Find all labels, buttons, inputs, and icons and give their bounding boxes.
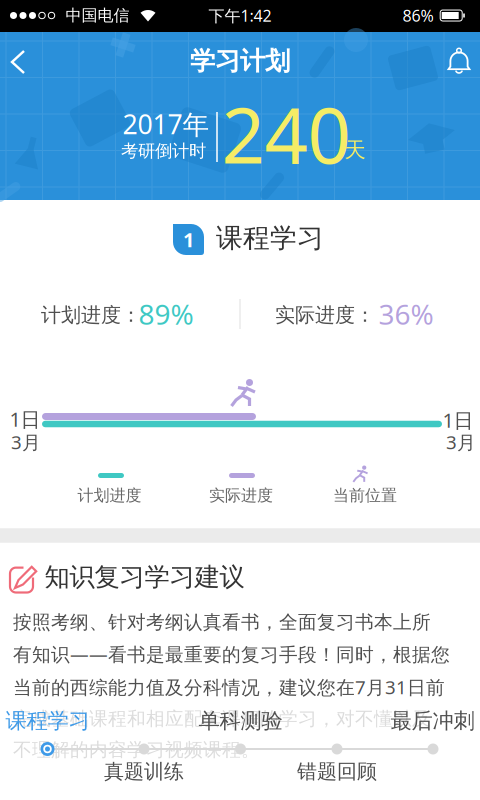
staticText: 1日 <box>442 407 473 433</box>
button[interactable]: 错题回顾 <box>297 759 377 784</box>
staticText: 计划进度： <box>41 303 141 327</box>
button[interactable]: 单科测验 <box>198 708 282 734</box>
button[interactable]: 真题训练 <box>104 759 184 784</box>
staticText: 240 <box>221 83 350 184</box>
staticText: 课程学习 <box>5 708 89 734</box>
staticText: 按照考纲、针对考纲认真看书，全面复习书本上所 有知识——看书是最重要的复习手段！… <box>13 611 450 761</box>
staticText: 单科测验 <box>198 708 282 734</box>
staticText: 3月 <box>446 430 476 454</box>
staticText: 学习计划 <box>190 45 290 76</box>
staticText: 1 <box>183 226 194 253</box>
staticText: 当前位置 <box>333 486 397 505</box>
staticText: 1日 <box>9 406 40 432</box>
staticText: 下午1:42 <box>208 5 271 26</box>
staticText: 天 <box>344 137 365 163</box>
staticText: 知识复习学习建议 <box>44 561 244 592</box>
button[interactable]: 课程学习 <box>5 708 89 734</box>
button[interactable]: Notifications <box>440 38 478 84</box>
staticText: 89% <box>138 295 193 333</box>
staticText: 36% <box>378 295 433 333</box>
button[interactable]: Back <box>2 39 34 85</box>
staticText: 课程学习 <box>216 222 324 254</box>
staticText: 错题回顾 <box>297 759 377 784</box>
staticText: 中国电信 <box>65 6 129 25</box>
staticText: 实际进度： <box>275 303 375 327</box>
button[interactable]: 最后冲刺 <box>390 708 474 734</box>
staticText: 考研倒计时 <box>121 140 206 162</box>
staticText: 计划进度 <box>77 486 141 505</box>
staticText: 86% <box>402 5 433 26</box>
staticText: 实际进度 <box>209 486 273 505</box>
staticText: 3月 <box>11 430 41 454</box>
staticText: 最后冲刺 <box>390 708 474 734</box>
staticText: 真题训练 <box>104 759 184 784</box>
staticText: 2017年 <box>122 106 209 142</box>
